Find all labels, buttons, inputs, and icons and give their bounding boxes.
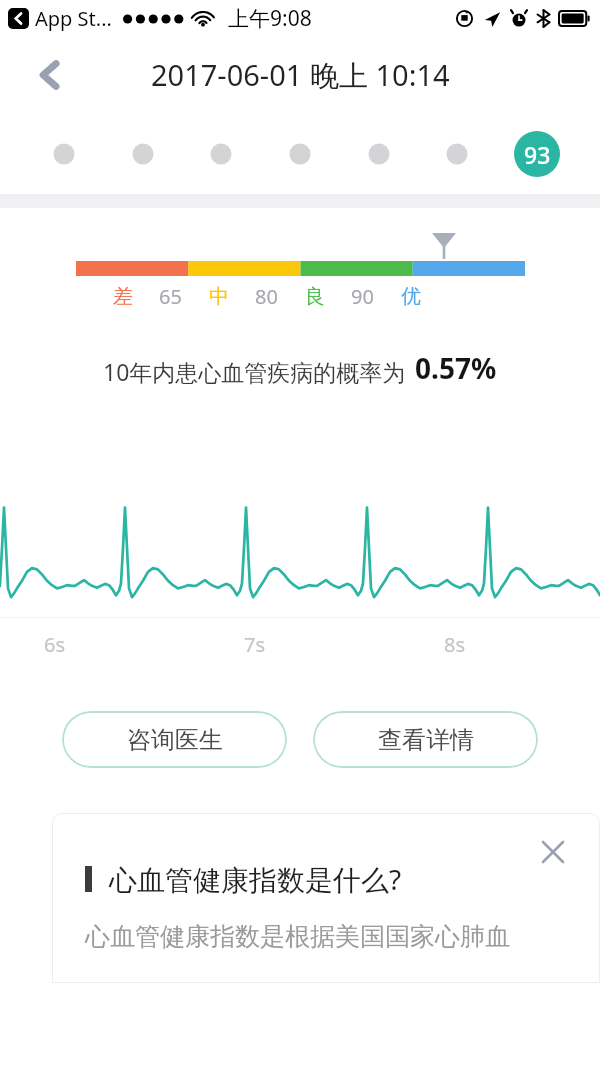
staticText: 8s bbox=[444, 631, 466, 658]
staticText: 心血管健康指数是根据美国国家心肺血 bbox=[85, 921, 510, 952]
staticText: 2017-06-01 晚上 10:14 bbox=[151, 55, 450, 95]
staticText: 93 bbox=[524, 139, 551, 170]
button[interactable]: 查看详情 bbox=[313, 711, 538, 768]
staticText: 差 bbox=[113, 284, 133, 309]
staticText: 80 bbox=[255, 283, 278, 310]
staticText: 7s bbox=[244, 631, 266, 658]
staticText: 中 bbox=[209, 284, 229, 309]
button[interactable]: 咨询医生 bbox=[62, 711, 287, 768]
staticText: 0.57% bbox=[415, 349, 497, 387]
staticText: 90 bbox=[351, 283, 374, 310]
button[interactable]: Back bbox=[22, 47, 78, 103]
button[interactable]: 93 bbox=[514, 131, 560, 177]
staticText: 咨询医生 bbox=[127, 725, 223, 755]
staticText: 优 bbox=[401, 284, 421, 309]
button[interactable]: Close bbox=[534, 833, 572, 871]
staticText: 10年内患心血管疾病的概率为 bbox=[103, 356, 406, 387]
staticText: 6s bbox=[44, 631, 66, 658]
staticText: 上午9:08 bbox=[228, 4, 312, 33]
staticText: App St... bbox=[35, 5, 112, 32]
staticText: 良 bbox=[305, 284, 325, 309]
staticText: 65 bbox=[159, 283, 182, 310]
staticText: 心血管健康指数是什么? bbox=[109, 860, 402, 898]
staticText: 查看详情 bbox=[378, 725, 474, 755]
